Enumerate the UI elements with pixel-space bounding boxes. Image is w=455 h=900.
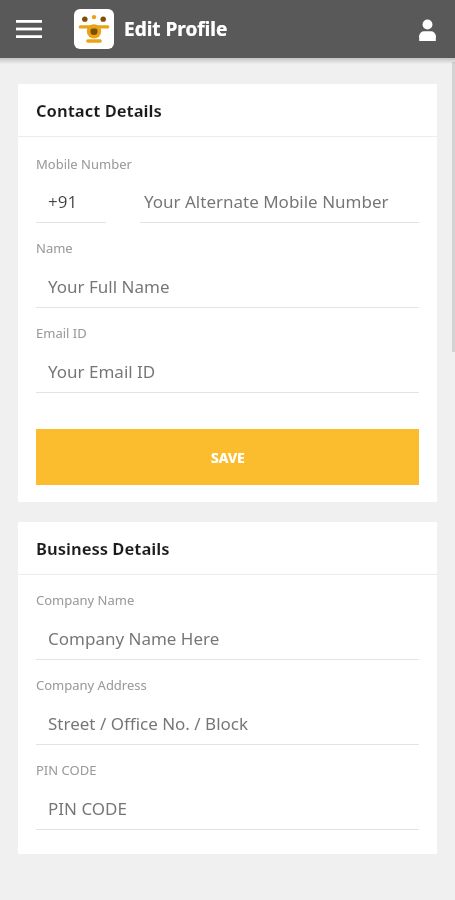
button[interactable]: App logo — [74, 9, 114, 49]
staticText: Your Email ID — [48, 360, 156, 383]
button[interactable]: Your Alternate Mobile Number — [140, 180, 419, 223]
staticText: Street / Office No. / Block — [48, 712, 249, 735]
staticText: Your Full Name — [48, 275, 170, 298]
button[interactable]: Open navigation menu — [9, 9, 49, 49]
staticText: Name — [36, 239, 73, 257]
button[interactable]: Street / Office No. / Block — [36, 702, 419, 745]
staticText: SAVE — [211, 448, 245, 467]
staticText: Company Name Here — [48, 627, 220, 650]
button[interactable]: Your Full Name — [36, 265, 419, 308]
staticText: Your Alternate Mobile Number — [144, 190, 389, 213]
button[interactable]: PIN CODE — [36, 787, 419, 830]
staticText: Business Details — [36, 537, 170, 559]
staticText: PIN CODE — [36, 761, 97, 779]
button[interactable]: SAVE — [36, 429, 419, 485]
button[interactable]: Account — [407, 9, 447, 49]
staticText: Company Name — [36, 591, 135, 609]
staticText: Mobile Number — [36, 155, 132, 173]
button[interactable]: Company Name Here — [36, 617, 419, 660]
staticText: +91 — [48, 190, 78, 213]
button[interactable]: Your Email ID — [36, 350, 419, 393]
staticText: Email ID — [36, 324, 87, 342]
staticText: PIN CODE — [48, 797, 127, 820]
staticText: Edit Profile — [124, 16, 228, 42]
staticText: Company Address — [36, 676, 147, 694]
staticText: Contact Details — [36, 99, 162, 121]
button[interactable]: +91 — [36, 180, 106, 223]
